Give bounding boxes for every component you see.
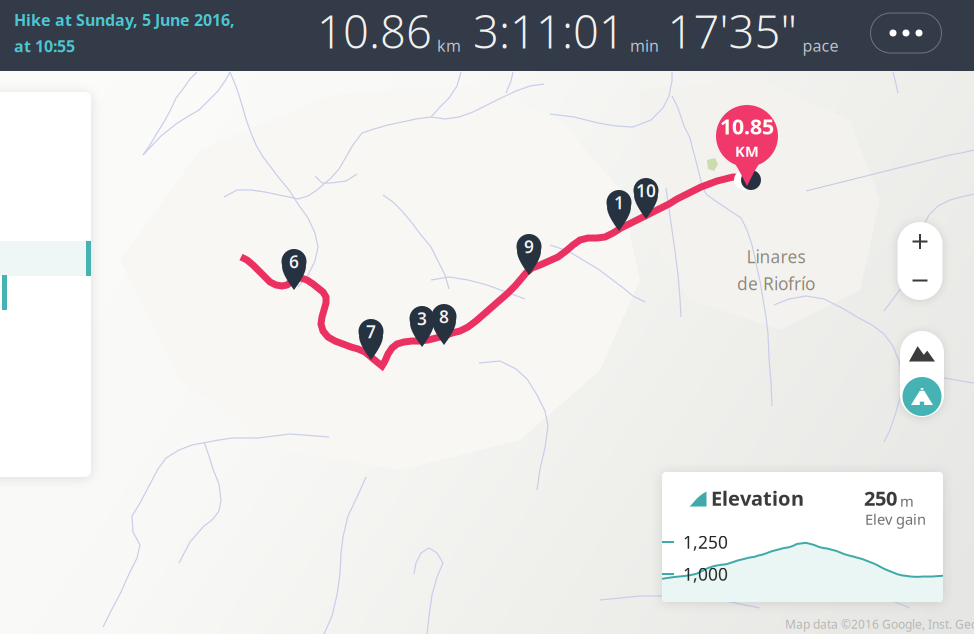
- staticText: de Riofrío: [737, 272, 815, 295]
- staticText: 9: [524, 235, 534, 258]
- staticText: km: [437, 35, 461, 56]
- staticText: 7: [366, 320, 376, 343]
- staticText: 3: [417, 307, 427, 330]
- button[interactable]: Zoom out: [897, 261, 942, 300]
- staticText: 250: [864, 485, 897, 511]
- staticText: Elevation: [711, 485, 804, 511]
- staticText: Hike at Sunday, 5 June 2016,: [14, 9, 235, 30]
- button[interactable]: Zoom in: [897, 222, 942, 261]
- staticText: 1,250: [683, 530, 728, 553]
- staticText: KM: [735, 141, 759, 161]
- staticText: Map data ©2016 Google, Inst. Geogr. Naci…: [785, 616, 974, 632]
- staticText: 3:11:01: [473, 1, 625, 61]
- staticText: at 10:55: [14, 35, 75, 57]
- staticText: m: [900, 491, 914, 511]
- staticText: min: [630, 35, 659, 56]
- button[interactable]: More options: [870, 13, 941, 53]
- staticText: 17'35": [667, 1, 797, 61]
- staticText: 10.85: [720, 112, 774, 140]
- button[interactable]: Terrain layer: [900, 331, 944, 376]
- staticText: 8: [439, 305, 449, 328]
- staticText: Linares: [746, 245, 805, 268]
- button[interactable]: Route layer: [900, 376, 944, 417]
- staticText: 10: [636, 179, 656, 202]
- staticText: 1,000: [683, 562, 728, 585]
- staticText: 6: [289, 250, 299, 273]
- staticText: Elev gain: [865, 509, 926, 529]
- staticText: 1: [614, 191, 624, 214]
- staticText: pace: [802, 35, 838, 56]
- staticText: 10.86: [317, 1, 432, 61]
